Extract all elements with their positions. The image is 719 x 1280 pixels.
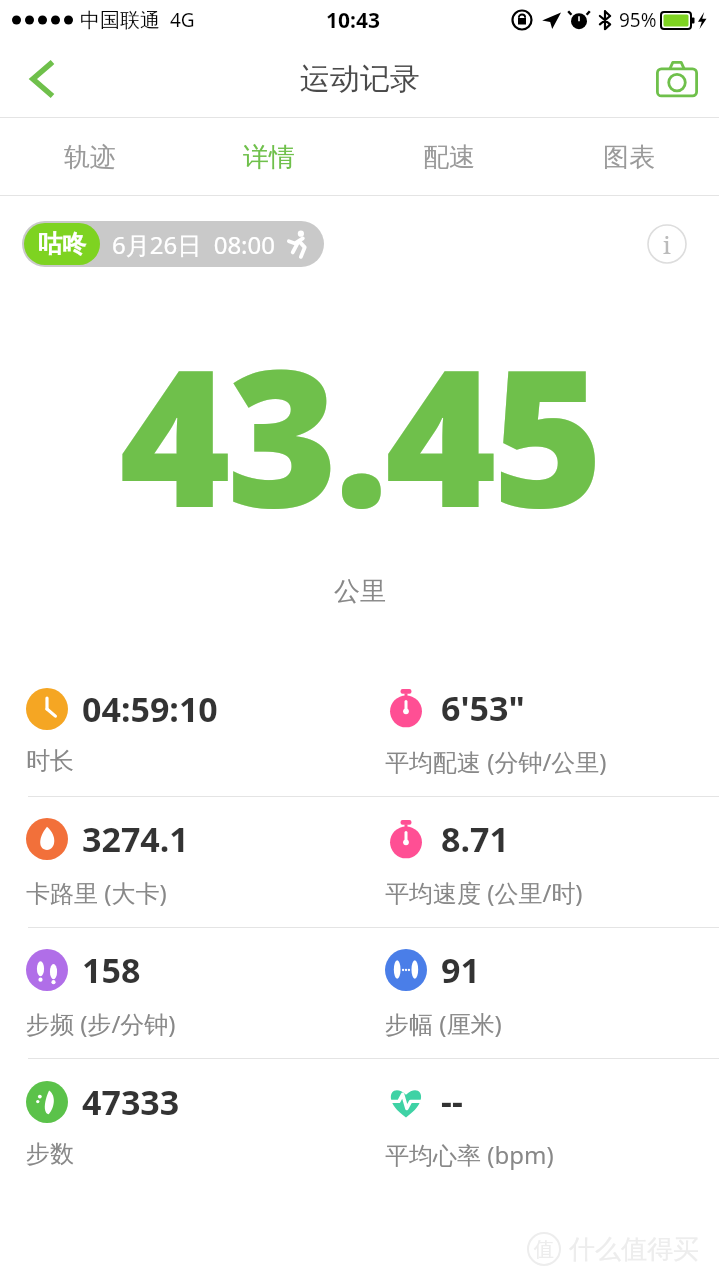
staticText: 值 bbox=[534, 1237, 554, 1262]
staticText: 什么值得买 bbox=[569, 1233, 699, 1266]
staticText: 中国联通 bbox=[80, 8, 160, 33]
button[interactable]: 91 bbox=[359, 928, 719, 1058]
button[interactable]: 3274.1 bbox=[0, 797, 359, 927]
staticText: 6月26日 08:00 bbox=[112, 228, 276, 261]
staticText: 3274.1 bbox=[82, 816, 189, 862]
button[interactable]: 8.71 bbox=[359, 797, 719, 927]
staticText: 平均心率 (bpm) bbox=[385, 1138, 554, 1171]
button[interactable]: 158 bbox=[0, 928, 359, 1058]
staticText: 运动记录 bbox=[300, 60, 420, 98]
staticText: 详情 bbox=[243, 141, 295, 174]
staticText: 咕咚 bbox=[38, 229, 86, 259]
staticText: 10:43 bbox=[326, 6, 380, 35]
button[interactable]: 咕咚 bbox=[22, 221, 324, 267]
staticText: 158 bbox=[82, 947, 141, 993]
button[interactable]: 图表 bbox=[539, 118, 719, 196]
staticText: 平均速度 (公里/时) bbox=[385, 876, 583, 909]
staticText: 图表 bbox=[603, 141, 655, 174]
button[interactable]: 配速 bbox=[359, 118, 539, 196]
button[interactable]: 详情 bbox=[179, 118, 359, 196]
staticText: 91 bbox=[441, 947, 480, 993]
button[interactable]: -- bbox=[359, 1059, 719, 1189]
staticText: 04:59:10 bbox=[82, 686, 218, 732]
staticText: 卡路里 (大卡) bbox=[26, 876, 167, 909]
staticText: 步频 (步/分钟) bbox=[26, 1007, 176, 1040]
staticText: 6'53" bbox=[441, 685, 525, 731]
button[interactable]: Back bbox=[14, 51, 70, 107]
staticText: 时长 bbox=[26, 746, 74, 776]
staticText: 公里 bbox=[334, 575, 386, 608]
button[interactable]: Info bbox=[645, 222, 689, 266]
button[interactable]: Camera bbox=[649, 51, 705, 107]
staticText: 配速 bbox=[423, 141, 475, 174]
staticText: 8.71 bbox=[441, 816, 509, 862]
staticText: 47333 bbox=[82, 1079, 180, 1125]
staticText: -- bbox=[441, 1078, 463, 1124]
staticText: 轨迹 bbox=[64, 141, 116, 174]
staticText: 4G bbox=[170, 7, 195, 33]
button[interactable]: 轨迹 bbox=[0, 118, 179, 196]
staticText: 步幅 (厘米) bbox=[385, 1007, 502, 1040]
staticText: 步数 bbox=[26, 1139, 74, 1169]
staticText: 95% bbox=[619, 7, 657, 33]
staticText: i bbox=[663, 228, 671, 261]
button[interactable]: 04:59:10 bbox=[0, 666, 359, 796]
staticText: 43.45 bbox=[119, 304, 600, 563]
button[interactable]: 6'53" bbox=[359, 666, 719, 796]
staticText: 平均配速 (分钟/公里) bbox=[385, 745, 607, 778]
button[interactable]: 47333 bbox=[0, 1059, 359, 1189]
